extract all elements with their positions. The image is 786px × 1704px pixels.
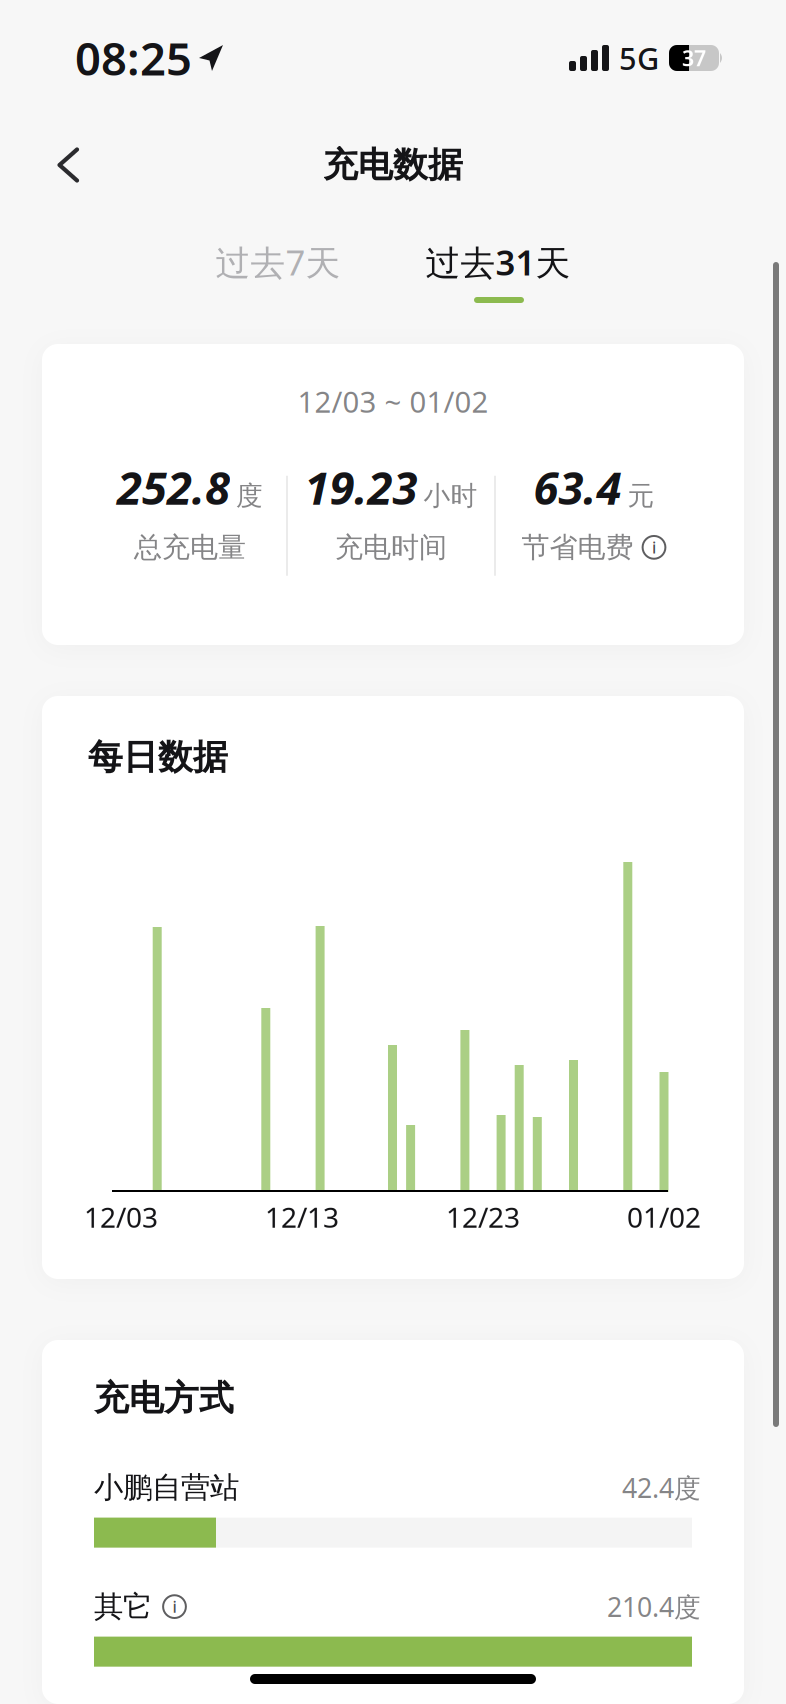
staticText: 12/03 bbox=[84, 1198, 158, 1236]
button[interactable]: 过去7天 bbox=[215, 239, 340, 285]
staticText: 小鹏自营站 bbox=[94, 1470, 239, 1506]
button[interactable]: i bbox=[641, 535, 666, 560]
staticText: 210.4度 bbox=[607, 1589, 701, 1624]
staticText: 充电数据 bbox=[323, 144, 463, 186]
staticText: 过去31天 bbox=[425, 239, 570, 285]
staticText: 元 bbox=[627, 479, 654, 512]
staticText: 12/23 bbox=[446, 1198, 520, 1236]
staticText: 其它 bbox=[94, 1589, 152, 1625]
staticText: 01/02 bbox=[627, 1198, 701, 1236]
button[interactable] bbox=[0, 147, 80, 183]
staticText: 充电方式 bbox=[94, 1377, 234, 1420]
staticText: 37 bbox=[682, 44, 706, 72]
staticText: 63.4 bbox=[533, 457, 621, 517]
staticText: 19.23 bbox=[304, 457, 417, 517]
button[interactable]: i bbox=[162, 1594, 187, 1619]
staticText: 总充电量 bbox=[134, 530, 246, 565]
staticText: i bbox=[652, 537, 656, 558]
staticText: 12/03 ~ 01/02 bbox=[297, 382, 488, 421]
staticText: 小时 bbox=[423, 479, 477, 512]
staticText: 42.4度 bbox=[622, 1470, 701, 1505]
staticText: 过去7天 bbox=[215, 239, 340, 285]
staticText: 5G bbox=[619, 38, 659, 78]
staticText: 252.8 bbox=[117, 457, 230, 517]
staticText: 充电时间 bbox=[335, 530, 447, 565]
staticText: 每日数据 bbox=[88, 736, 228, 779]
button[interactable]: 过去31天 bbox=[340, 239, 570, 285]
staticText: 节省电费 bbox=[521, 530, 633, 565]
staticText: 12/13 bbox=[265, 1198, 339, 1236]
staticText: 08:25 bbox=[75, 28, 192, 88]
staticText: i bbox=[172, 1596, 176, 1617]
staticText: 度 bbox=[236, 479, 263, 512]
